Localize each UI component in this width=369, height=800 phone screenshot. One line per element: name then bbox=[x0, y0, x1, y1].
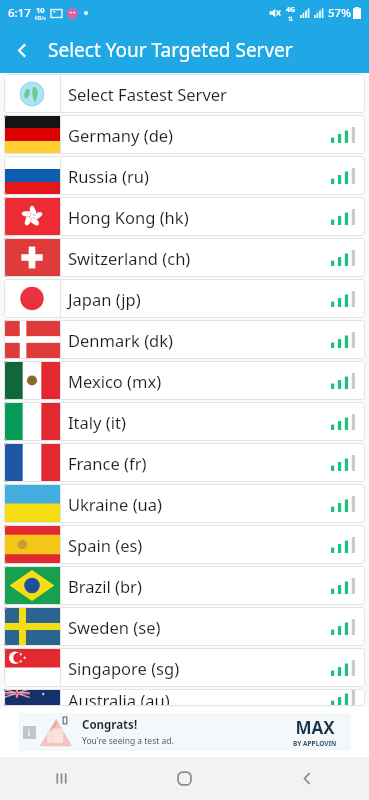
button[interactable]: Russia (ru) bbox=[4, 156, 365, 195]
staticText: Brazil (br) bbox=[68, 575, 142, 597]
staticText: 57% bbox=[328, 5, 351, 21]
button[interactable]: France (fr) bbox=[4, 443, 365, 482]
button[interactable]: Hong Kong (hk) bbox=[4, 197, 365, 236]
staticText: Japan (jp) bbox=[68, 288, 141, 310]
staticText: 4G bbox=[286, 5, 296, 15]
button[interactable]: Home bbox=[123, 757, 246, 800]
staticText: Denmark (dk) bbox=[68, 329, 174, 351]
button[interactable]: Switzerland (ch) bbox=[4, 238, 365, 277]
button[interactable]: i bbox=[0, 707, 369, 757]
staticText: Switzerland (ch) bbox=[68, 247, 191, 269]
button[interactable]: Singapore (sg) bbox=[4, 648, 365, 687]
button[interactable]: Japan (jp) bbox=[4, 279, 365, 318]
staticText: i bbox=[28, 727, 31, 738]
staticText: Spain (es) bbox=[68, 534, 143, 556]
staticText: 6:17 bbox=[8, 5, 31, 21]
staticText: KB/s bbox=[35, 15, 46, 22]
button[interactable]: Recent apps bbox=[0, 757, 123, 800]
staticText: MAX bbox=[295, 716, 335, 739]
staticText: Italy (it) bbox=[68, 411, 126, 433]
button[interactable]: Brazil (br) bbox=[4, 566, 365, 605]
button[interactable]: Spain (es) bbox=[4, 525, 365, 564]
staticText: Germany (de) bbox=[68, 124, 174, 146]
button[interactable]: Back bbox=[246, 757, 369, 800]
button[interactable]: Denmark (dk) bbox=[4, 320, 365, 359]
staticText: Select Fastest Server bbox=[68, 83, 227, 105]
button[interactable]: Sweden (se) bbox=[4, 607, 365, 646]
button[interactable]: Germany (de) bbox=[4, 115, 365, 154]
staticText: ⇅ bbox=[288, 15, 294, 22]
button[interactable]: Back bbox=[0, 28, 44, 72]
button[interactable]: Ukraine (ua) bbox=[4, 484, 365, 523]
staticText: 10 bbox=[36, 5, 45, 15]
staticText: Hong Kong (hk) bbox=[68, 206, 189, 228]
staticText: BY APPLOVIN bbox=[293, 739, 337, 748]
button[interactable]: Italy (it) bbox=[4, 402, 365, 441]
staticText: France (fr) bbox=[68, 452, 147, 474]
staticText: Singapore (sg) bbox=[68, 657, 180, 679]
button[interactable]: Australia (au) bbox=[4, 689, 365, 706]
staticText: Sweden (se) bbox=[68, 616, 161, 638]
staticText: Ukraine (ua) bbox=[68, 493, 163, 515]
staticText: Australia (au) bbox=[68, 689, 170, 706]
button[interactable]: Select Fastest Server bbox=[4, 74, 365, 113]
staticText: You're seeing a test ad. bbox=[82, 735, 174, 747]
staticText: Russia (ru) bbox=[68, 165, 149, 187]
staticText: Select Your Targeted Server bbox=[48, 37, 293, 63]
button[interactable]: Mexico (mx) bbox=[4, 361, 365, 400]
staticText: Mexico (mx) bbox=[68, 370, 162, 392]
staticText: Congrats! bbox=[82, 717, 138, 733]
